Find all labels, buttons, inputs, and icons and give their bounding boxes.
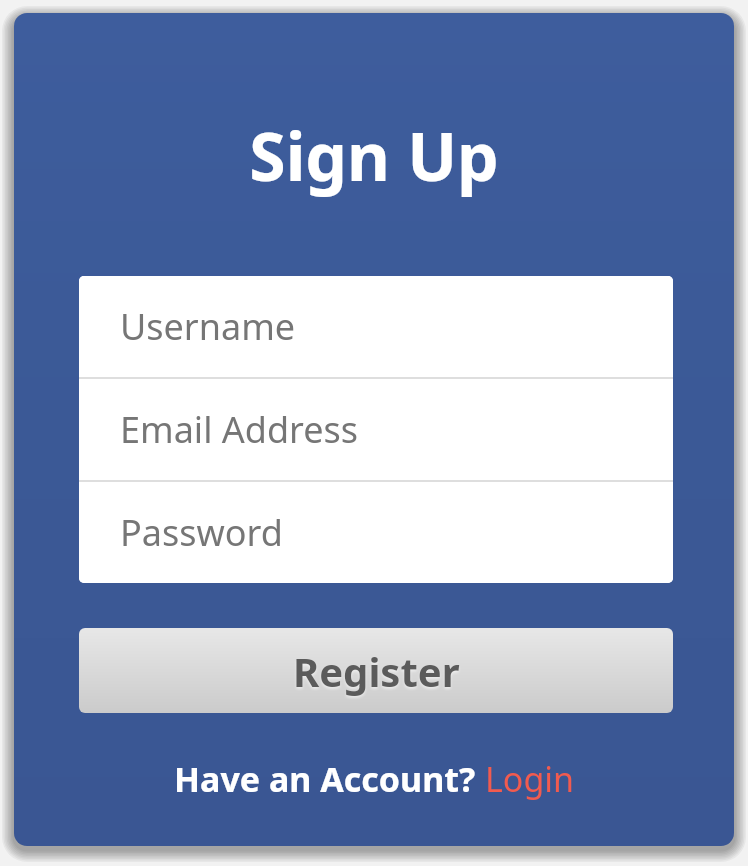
staticText: Email Address bbox=[120, 405, 359, 454]
button[interactable]: Username bbox=[79, 276, 673, 377]
staticText: Password bbox=[120, 508, 283, 557]
button[interactable]: Email Address bbox=[79, 379, 673, 480]
button[interactable]: Login bbox=[485, 756, 575, 802]
button[interactable]: Password bbox=[79, 482, 673, 583]
staticText: Register bbox=[293, 644, 460, 698]
staticText: Login bbox=[485, 756, 575, 802]
staticText: Have an Account? bbox=[174, 756, 485, 802]
staticText: Sign Up bbox=[249, 110, 499, 200]
staticText: Username bbox=[120, 302, 296, 351]
button[interactable]: Register bbox=[79, 628, 673, 713]
